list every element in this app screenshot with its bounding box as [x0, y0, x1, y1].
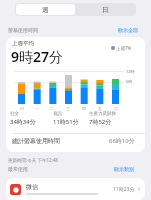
button[interactable]: 週 [16, 4, 75, 15]
staticText: 最常使用 [8, 166, 28, 172]
staticText: 六 [114, 106, 118, 111]
staticText: 上週平均 [12, 40, 34, 47]
staticText: 螢幕使用時間 [8, 27, 38, 33]
staticText: 顯示全部 [118, 27, 138, 33]
button[interactable]: 日 [75, 4, 135, 15]
button[interactable]: 顯示全部 [118, 27, 138, 33]
button[interactable]: 微信 [10, 178, 141, 200]
staticText: 9時27分 [11, 47, 64, 66]
staticText: 一 [35, 106, 39, 111]
staticText: 上週7% [116, 45, 132, 51]
staticText: 日 [102, 6, 109, 14]
staticText: 三 [66, 106, 70, 111]
staticText: 微信 [26, 183, 38, 191]
staticText: 34時34分 [10, 118, 36, 126]
staticText: 11時23分 [113, 186, 135, 193]
staticText: 週 [42, 6, 49, 14]
staticText: 顯示類別 [114, 166, 134, 172]
staticText: 五 [98, 106, 102, 111]
staticText: 生產力及財務 [89, 111, 116, 117]
staticText: 更新時間:今天 下午12:48 [8, 157, 58, 163]
staticText: 總計螢幕使用時間 [12, 137, 60, 145]
staticText: 6時 [126, 79, 133, 84]
staticText: 資訊 [53, 111, 62, 117]
staticText: 社交 [10, 111, 19, 117]
button[interactable]: 上週平均 [6, 37, 145, 152]
staticText: 7時52分 [89, 118, 112, 126]
staticText: 11時51分 [53, 118, 79, 126]
staticText: 66時10分 [109, 137, 135, 145]
staticText: 四 [82, 106, 86, 111]
staticText: 日 [20, 106, 24, 111]
staticText: 二 [50, 106, 54, 111]
button[interactable]: 顯示類別 [114, 166, 134, 172]
staticText: 12時 [126, 69, 135, 74]
